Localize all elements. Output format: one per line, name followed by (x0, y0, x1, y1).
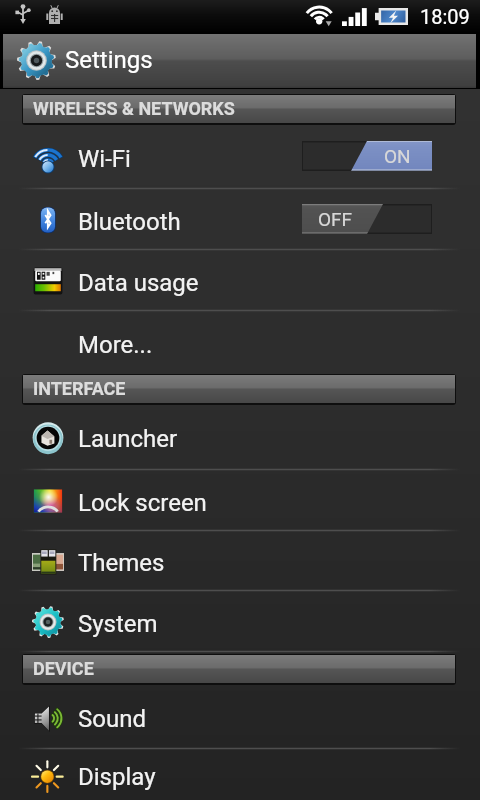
button[interactable]: Bluetooth switch (302, 204, 432, 234)
button[interactable]: Data usage (0, 249, 480, 310)
staticText: WIRELESS & NETWORKS (33, 98, 235, 119)
staticText: Data usage (78, 269, 199, 297)
staticText: Launcher (78, 425, 178, 453)
button[interactable]: Sound (0, 684, 480, 748)
staticText: Bluetooth (78, 208, 181, 236)
button[interactable]: Themes (0, 530, 480, 590)
staticText: 18:09 (420, 5, 470, 28)
staticText: Themes (78, 549, 165, 577)
staticText: INTERFACE (33, 378, 126, 399)
staticText: Settings (65, 46, 153, 74)
button[interactable]: Launcher (0, 403, 480, 469)
staticText: DEVICE (33, 658, 94, 679)
button[interactable]: Bluetooth (0, 188, 480, 249)
staticText: OFF (318, 208, 353, 230)
button[interactable]: Wi-Fi (0, 124, 480, 188)
button[interactable]: Display (0, 748, 480, 800)
button[interactable]: Lock screen (0, 469, 480, 530)
staticText: More... (78, 331, 153, 359)
staticText: Wi-Fi (78, 145, 131, 173)
button[interactable]: More... (0, 310, 480, 374)
staticText: System (78, 610, 158, 638)
staticText: Display (78, 763, 156, 791)
button[interactable]: System (0, 590, 480, 651)
staticText: Lock screen (78, 489, 207, 517)
staticText: Sound (78, 705, 146, 733)
button[interactable]: Wi-Fi switch (302, 141, 432, 171)
staticText: ON (384, 145, 411, 167)
button[interactable]: Settings (3, 34, 476, 88)
